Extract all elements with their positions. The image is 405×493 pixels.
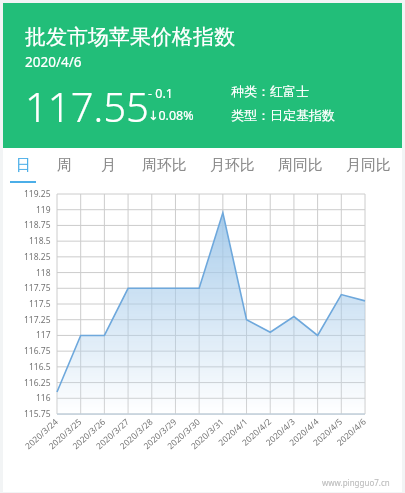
staticText: 日 xyxy=(16,156,31,175)
staticText: 种类：红富士 xyxy=(231,83,309,99)
staticText: 批发市场苹果价格指数 xyxy=(25,24,235,50)
staticText: 类型：日定基指数 xyxy=(231,107,335,123)
staticText: 月同比 xyxy=(346,156,391,175)
button[interactable]: 日 xyxy=(3,148,43,183)
button[interactable]: 周 xyxy=(43,148,86,183)
staticText: 117.55 xyxy=(25,79,149,133)
staticText: 周 xyxy=(57,156,72,175)
staticText: 月 xyxy=(101,156,116,175)
button[interactable]: 周同比 xyxy=(266,148,334,183)
staticText: 周环比 xyxy=(142,156,187,175)
staticText: 周同比 xyxy=(278,156,323,175)
button[interactable]: 月环比 xyxy=(198,148,266,183)
button[interactable]: 月同比 xyxy=(334,148,402,183)
staticText: 2020/4/6 xyxy=(25,53,82,71)
staticText: 月环比 xyxy=(210,156,255,175)
button[interactable]: 月 xyxy=(86,148,130,183)
button[interactable]: 周环比 xyxy=(130,148,198,183)
staticText: ↓0.08% xyxy=(148,107,194,124)
staticText: - 0.1 xyxy=(148,85,173,102)
